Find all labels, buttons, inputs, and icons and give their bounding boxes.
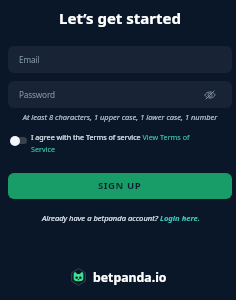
staticText: At least 8 characters, 1 upper case, 1 l…: [2, 112, 236, 122]
staticText: Already have a betpanda account? Login h…: [42, 213, 200, 223]
button[interactable]: I agree with the Terms of service View T…: [9, 132, 202, 154]
button[interactable]: Email: [8, 46, 232, 73]
button[interactable]: Show password: [203, 88, 216, 101]
staticText: betpanda.io: [93, 269, 167, 286]
staticText: Let’s get started: [2, 8, 236, 28]
button[interactable]: Already have a betpanda account? Login h…: [42, 213, 200, 223]
staticText: Password: [19, 89, 55, 100]
staticText: SIGN UP: [98, 179, 142, 192]
staticText: Email: [19, 54, 40, 65]
staticText: I agree with the Terms of service View T…: [31, 132, 202, 154]
button[interactable]: SIGN UP: [8, 173, 232, 199]
button[interactable]: Password: [8, 81, 232, 108]
